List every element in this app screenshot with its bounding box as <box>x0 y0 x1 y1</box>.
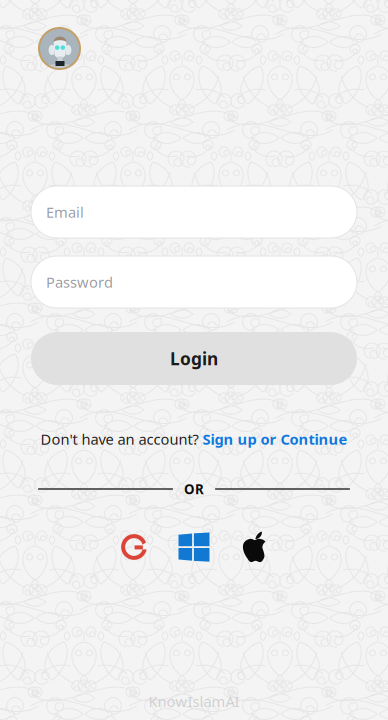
button[interactable]: Sign in with Google <box>104 529 164 565</box>
staticText: Sign up or Continue <box>202 429 347 449</box>
button[interactable]: Login <box>31 332 357 385</box>
button[interactable]: Sign in with Microsoft <box>164 529 224 565</box>
staticText: KnowIslamAI <box>148 691 239 711</box>
staticText: Don't have an account? <box>40 429 202 449</box>
staticText: Login <box>170 347 218 370</box>
button[interactable]: Don't have an account? <box>31 429 357 449</box>
button[interactable]: Profile <box>38 27 81 70</box>
staticText: Password <box>46 272 113 292</box>
staticText: Email <box>46 202 84 222</box>
button[interactable]: Sign in with Apple <box>224 529 284 565</box>
staticText: OR <box>184 480 204 498</box>
